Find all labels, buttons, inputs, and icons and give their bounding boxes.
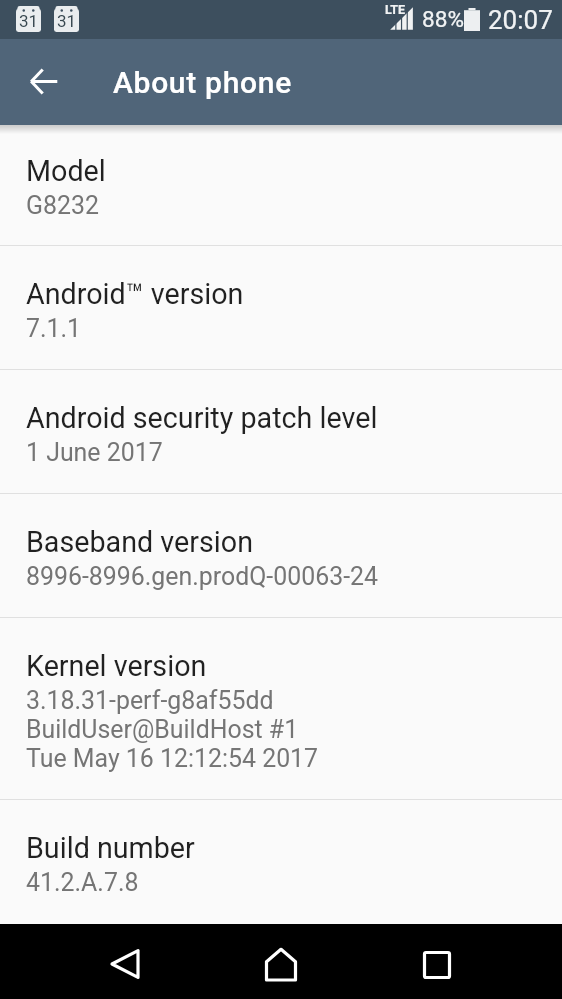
button[interactable]: Baseband version [0,494,562,617]
staticText: 31 [57,11,77,31]
button[interactable]: Home [245,928,317,999]
staticText: Tue May 16 12:12:54 2017 [26,744,319,773]
staticText: Model [26,154,106,188]
button[interactable]: Android security patch level [0,370,562,493]
staticText: Android™ version [26,277,244,311]
staticText: Build number [26,831,195,865]
staticText: 20:07 [488,5,553,35]
button[interactable]: Back [89,928,161,999]
staticText: 41.2.A.7.8 [26,868,139,897]
staticText: 31 [19,11,39,31]
staticText: 3.18.31-perf-g8af55dd [26,686,274,715]
button[interactable]: Back [10,48,78,116]
staticText: LTE [385,2,406,17]
staticText: 88% [422,6,464,32]
staticText: 1 June 2017 [26,438,163,467]
staticText: About phone [113,65,292,100]
staticText: Kernel version [26,649,207,683]
staticText: BuildUser@BuildHost #1 [26,715,299,744]
staticText: Android security patch level [26,401,378,435]
staticText: 7.1.1 [26,314,82,343]
button[interactable]: Build number [0,800,562,923]
staticText: Baseband version [26,525,253,559]
staticText: G8232 [26,191,99,220]
staticText: 8996-8996.gen.prodQ-00063-24 [26,562,379,591]
button[interactable]: Model [0,125,562,245]
button[interactable]: Recent apps [401,928,473,999]
button[interactable]: Kernel version [0,618,562,799]
button[interactable]: Android™ version [0,246,562,369]
